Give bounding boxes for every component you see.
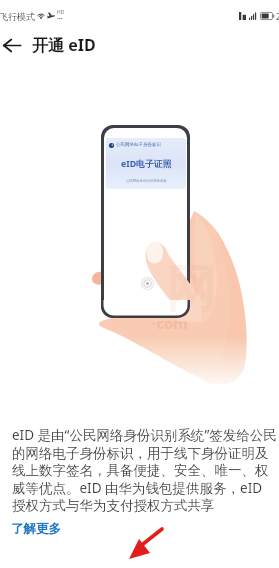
staticText: 网 <box>166 258 216 321</box>
staticText: eID 是由“公民网络身份识别系统”签发给公民的网络电子身份标识，用于线下身份证… <box>12 426 278 514</box>
staticText: ·com <box>152 313 188 333</box>
staticText: 开通 eID <box>32 34 96 56</box>
staticText: ••• <box>57 16 63 23</box>
staticText: 飞行模式 <box>0 11 35 22</box>
staticText: 了解更多 <box>11 521 61 537</box>
staticText: eID电子证照 <box>121 158 172 170</box>
staticText: 2 <box>276 10 279 22</box>
staticText: 公民网络电子身份标识 <box>116 142 161 148</box>
staticText: 公民网络身份识别系统签发 <box>126 179 167 183</box>
staticText: HD <box>57 9 65 16</box>
button[interactable]: 了解更多 <box>11 521 61 537</box>
button[interactable]: Back <box>0 29 28 61</box>
